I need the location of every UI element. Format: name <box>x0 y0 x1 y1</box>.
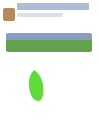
button[interactable]: Item <box>0 0 99 26</box>
